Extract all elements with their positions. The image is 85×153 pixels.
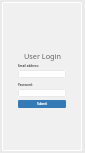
staticText: Password: bbox=[18, 83, 33, 87]
button[interactable]: Submit bbox=[18, 100, 66, 108]
staticText: Submit bbox=[37, 102, 48, 106]
staticText: User Login bbox=[24, 51, 61, 61]
button[interactable]: Email address input bbox=[18, 70, 66, 78]
staticText: Email address: bbox=[18, 64, 39, 68]
button[interactable]: Password input bbox=[18, 89, 66, 97]
